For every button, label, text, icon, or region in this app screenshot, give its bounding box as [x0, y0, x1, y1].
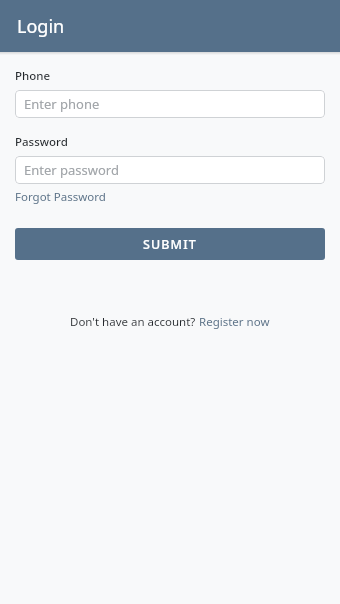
staticText: Password [15, 134, 68, 150]
staticText: Enter phone [24, 95, 100, 113]
staticText: Login [17, 14, 65, 39]
staticText: Enter password [24, 161, 119, 179]
button[interactable]: Enter password [15, 156, 325, 184]
button[interactable]: Forgot Password [15, 189, 106, 205]
staticText: Phone [15, 68, 51, 84]
button[interactable]: SUBMIT [15, 228, 325, 260]
button[interactable]: Enter phone [15, 90, 325, 118]
button[interactable]: Register now [199, 314, 270, 330]
staticText: SUBMIT [143, 236, 197, 253]
staticText: Don't have an account? [70, 314, 199, 330]
